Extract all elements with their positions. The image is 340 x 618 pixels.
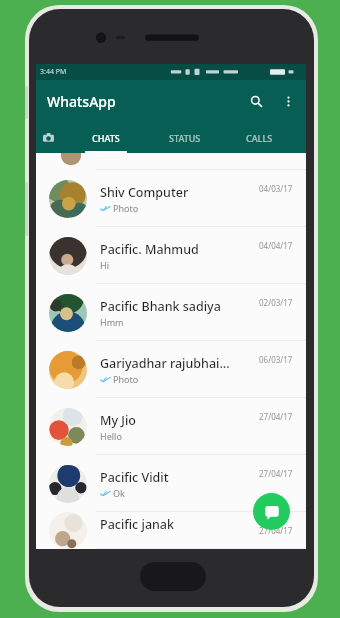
staticText: Pacific Vidit [100,469,169,486]
button[interactable]: Pacific Vidit [36,455,306,512]
staticText: Hi [100,259,109,271]
button[interactable]: Gariyadhar rajubhai... [36,341,306,398]
button[interactable]: Shiv Computer [36,170,306,227]
staticText: CHATS [92,132,120,144]
staticText: 3:44 PM [40,67,67,77]
staticText: STATUS [169,132,201,144]
staticText: 27/04/17 [259,468,293,479]
staticText: Pacific janak [100,516,175,533]
button[interactable]: Pacific janak [36,512,306,549]
staticText: 04/03/17 [259,183,293,194]
button[interactable]: Camera [36,122,61,153]
button[interactable]: My Jio [36,398,306,455]
staticText: Pacific. Mahmud [100,241,199,258]
staticText: WhatsApp [47,92,116,111]
button[interactable]: CHATS [66,122,146,153]
staticText: My Jio [100,412,136,429]
staticText: 02/03/17 [259,297,293,308]
button[interactable]: Pacific Bhank sadiya [36,284,306,341]
button[interactable]: New chat [253,493,290,530]
button[interactable]: More options [274,87,302,115]
staticText: Hmm [100,316,124,328]
staticText: Ok [113,487,125,499]
staticText: 06/03/17 [259,354,293,365]
button[interactable]: Pacific. Mahmud [36,227,306,284]
staticText: 04/04/17 [259,240,293,251]
staticText: 27/04/17 [259,525,293,536]
staticText: Gariyadhar rajubhai... [100,355,230,372]
staticText: Photo [113,202,139,214]
button[interactable]: STATUS [146,122,224,153]
button[interactable]: CALLS [224,122,294,153]
staticText: Shiv Computer [100,184,189,201]
staticText: Hello [100,430,122,442]
staticText: Pacific Bhank sadiya [100,298,221,315]
staticText: 27/04/17 [259,411,293,422]
staticText: CALLS [246,132,273,144]
staticText: Photo [113,373,139,385]
button[interactable]: Search [242,87,270,115]
